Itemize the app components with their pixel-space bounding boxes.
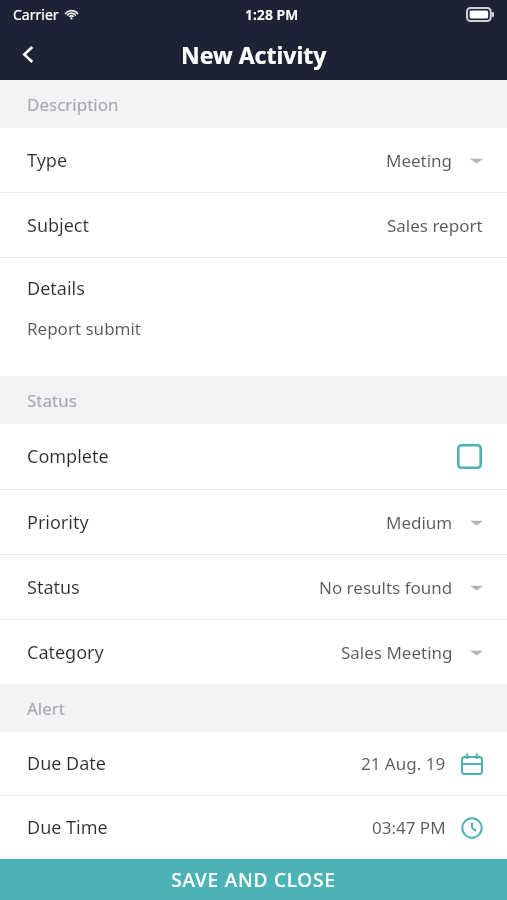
staticText: Sales report bbox=[387, 214, 483, 237]
staticText: Carrier bbox=[13, 5, 59, 24]
staticText: Due Date bbox=[27, 751, 106, 776]
staticText: Subject bbox=[27, 213, 90, 238]
staticText: 03:47 PM bbox=[372, 816, 446, 839]
staticText: Details bbox=[27, 276, 85, 301]
button[interactable]: SAVE AND CLOSE bbox=[0, 859, 507, 900]
button[interactable]: Subject bbox=[0, 193, 507, 257]
other: Pick date bbox=[461, 753, 483, 775]
other: Complete bbox=[457, 444, 482, 469]
staticText: Description bbox=[27, 93, 119, 116]
button[interactable]: Due Time bbox=[0, 796, 507, 859]
staticText: No results found bbox=[319, 576, 453, 599]
staticText: SAVE AND CLOSE bbox=[171, 867, 336, 893]
staticText: Medium bbox=[386, 511, 453, 534]
staticText: Complete bbox=[27, 444, 109, 469]
other: Pick time bbox=[461, 817, 483, 839]
staticText: Priority bbox=[27, 510, 89, 535]
staticText: New Activity bbox=[181, 39, 327, 70]
staticText: Sales Meeting bbox=[341, 641, 453, 664]
staticText: Due Time bbox=[27, 815, 108, 840]
staticText: 21 Aug. 19 bbox=[361, 752, 446, 775]
button[interactable]: Status bbox=[0, 555, 507, 619]
staticText: Type bbox=[27, 148, 68, 173]
button[interactable]: Priority bbox=[0, 490, 507, 554]
button[interactable]: Details bbox=[0, 258, 507, 376]
button[interactable]: Type bbox=[0, 128, 507, 192]
button[interactable]: Back bbox=[0, 28, 56, 80]
staticText: Status bbox=[27, 575, 80, 600]
staticText: Alert bbox=[27, 697, 65, 720]
staticText: Report submit bbox=[27, 317, 142, 340]
button[interactable]: Complete bbox=[0, 424, 507, 489]
button[interactable]: Due Date bbox=[0, 732, 507, 795]
button[interactable]: Category bbox=[0, 620, 507, 684]
staticText: Status bbox=[27, 389, 77, 412]
staticText: Meeting bbox=[386, 149, 453, 172]
staticText: 1:28 PM bbox=[245, 5, 299, 24]
staticText: Category bbox=[27, 640, 104, 665]
